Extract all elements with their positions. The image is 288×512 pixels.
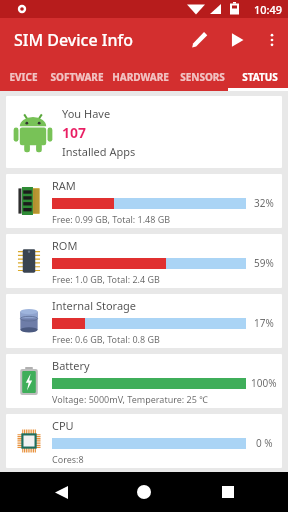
button[interactable]: Recents: [205, 472, 251, 512]
button[interactable]: Home: [121, 472, 167, 512]
staticText: Cores:8: [52, 453, 84, 465]
staticText: ROM: [52, 238, 78, 253]
button[interactable]: RAM: [6, 174, 282, 228]
button[interactable]: STATUS: [232, 62, 288, 91]
button[interactable]: You Have: [6, 96, 282, 168]
staticText: 100%: [251, 376, 277, 390]
staticText: 32%: [254, 196, 274, 210]
button[interactable]: Battery: [6, 354, 282, 408]
staticText: Internal Storage: [52, 298, 137, 313]
button[interactable]: More options: [256, 24, 288, 56]
staticText: Free: 0.99 GB, Total: 1.48 GB: [52, 213, 171, 225]
staticText: Battery: [52, 358, 90, 373]
button[interactable]: ROM: [6, 234, 282, 288]
staticText: Free: 0.6 GB, Total: 0.8 GB: [52, 333, 160, 345]
staticText: 59%: [254, 256, 274, 270]
button[interactable]: SENSORS: [173, 62, 232, 91]
staticText: 17%: [254, 316, 274, 330]
button[interactable]: EVICE: [0, 62, 46, 91]
staticText: SIM Device Info: [14, 29, 134, 51]
button[interactable]: Internal Storage: [6, 294, 282, 348]
button[interactable]: Back: [38, 472, 84, 512]
staticText: 0 %: [256, 436, 273, 450]
staticText: Voltage: 5000mV, Temperature: 25 ℃: [52, 393, 209, 405]
staticText: HARDWARE: [112, 70, 169, 84]
button[interactable]: HARDWARE: [107, 62, 173, 91]
button[interactable]: Play: [218, 21, 256, 59]
staticText: 10:49: [254, 2, 283, 17]
staticText: RAM: [52, 178, 76, 193]
staticText: Free: 1.0 GB, Total: 2.4 GB: [52, 273, 160, 285]
staticText: SOFTWARE: [50, 70, 104, 84]
staticText: STATUS: [242, 70, 278, 84]
button[interactable]: CPU: [6, 414, 282, 468]
staticText: Installed Apps: [62, 144, 136, 159]
button[interactable]: SOFTWARE: [46, 62, 107, 91]
button[interactable]: Edit: [180, 21, 218, 59]
staticText: CPU: [52, 418, 74, 433]
staticText: You Have: [62, 106, 111, 121]
staticText: EVICE: [9, 70, 38, 84]
staticText: 107: [62, 123, 87, 142]
staticText: SENSORS: [180, 70, 225, 84]
